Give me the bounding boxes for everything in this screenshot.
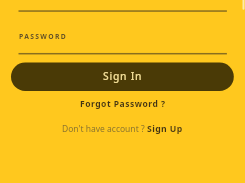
staticText: Forgot Password ? — [80, 98, 166, 110]
staticText: Sign In — [103, 69, 143, 83]
staticText: Sign Up — [147, 123, 183, 135]
staticText: Don't have account ? — [62, 123, 145, 135]
button[interactable]: Sign Up — [139, 117, 191, 141]
button[interactable]: Forgot Password ? — [70, 92, 176, 116]
button[interactable]: Sign In — [11, 62, 234, 91]
staticText: PASSWORD — [19, 32, 67, 41]
button[interactable]: Password field — [18, 22, 227, 54]
